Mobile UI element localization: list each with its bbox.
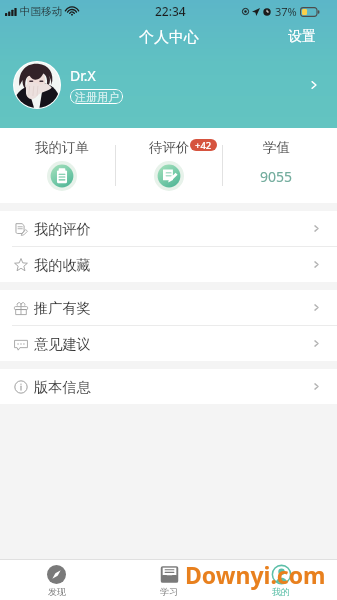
button[interactable]: 版本信息 (0, 369, 337, 404)
button[interactable]: 我的收藏 (0, 247, 337, 282)
staticText: 设置 (288, 28, 316, 46)
button[interactable]: 待评价 (116, 128, 222, 203)
staticText: 待评价 (149, 139, 190, 156)
staticText: 22:34 (155, 3, 186, 19)
staticText: Dr.X (70, 66, 96, 85)
staticText: 我的收藏 (34, 256, 91, 274)
staticText: 我的 (272, 586, 290, 597)
staticText: 9055 (260, 167, 293, 186)
button[interactable]: Dr.X (0, 53, 337, 117)
button[interactable]: 我的评价 (0, 211, 337, 246)
staticText: 37% (275, 4, 297, 19)
button[interactable]: 意见建议 (0, 326, 337, 361)
button[interactable]: 设置 (267, 28, 337, 46)
staticText: 发现 (48, 586, 66, 597)
button[interactable]: 我的订单 (8, 128, 115, 203)
staticText: 中国移动 (20, 5, 62, 18)
button[interactable]: 我的 (225, 559, 337, 600)
button[interactable]: 发现 (0, 559, 113, 600)
staticText: +42 (195, 139, 212, 151)
staticText: 学习 (160, 586, 178, 597)
button[interactable]: 学习 (113, 559, 225, 600)
staticText: 我的订单 (35, 139, 89, 156)
staticText: 我的评价 (34, 220, 91, 238)
staticText: 意见建议 (34, 335, 91, 353)
staticText: 个人中心 (139, 28, 199, 47)
button[interactable]: 推广有奖 (0, 290, 337, 325)
staticText: 版本信息 (34, 378, 91, 396)
staticText: 学值 (263, 139, 290, 156)
staticText: Downyi.com (185, 559, 326, 590)
button[interactable]: 学值 (223, 128, 329, 203)
staticText: 推广有奖 (34, 299, 91, 317)
staticText: 注册用户 (75, 90, 119, 104)
